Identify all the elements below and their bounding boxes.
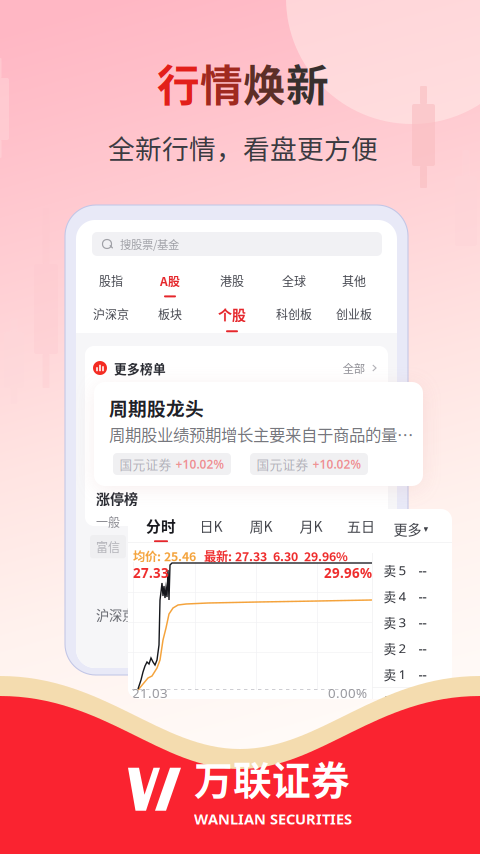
staticText: 1 [398, 665, 406, 683]
staticText: 情 [200, 52, 243, 114]
staticText: 全新行情，看盘更方便 [108, 128, 378, 167]
staticText: 29.96% [324, 564, 372, 582]
button[interactable]: 板块 [158, 305, 182, 331]
staticText: 月K [299, 515, 322, 536]
staticText: 卖 [383, 639, 396, 657]
staticText: 涨停榜 [96, 488, 138, 508]
staticText: 沪深京 [96, 605, 135, 624]
button[interactable]: 全球 [282, 272, 306, 297]
staticText: -- [418, 561, 426, 579]
staticText: 新 [286, 52, 329, 114]
staticText: 均价: 25.46 [133, 547, 196, 565]
staticText: 沪深京 [93, 305, 129, 323]
button[interactable]: 更多榜单 [85, 346, 388, 390]
button[interactable]: 个股 [218, 304, 246, 332]
staticText: 周K [249, 515, 272, 536]
button[interactable]: 沪深京 [93, 305, 129, 331]
staticText: 4 [398, 692, 406, 710]
staticText: 卖 [383, 613, 396, 631]
staticText: 股指 [99, 272, 123, 289]
button[interactable]: 更多 [386, 519, 436, 539]
staticText: 4 [398, 587, 406, 605]
button[interactable]: 港股 [220, 272, 244, 297]
staticText: -- [418, 613, 426, 631]
staticText: 最新: 27.33 6.30 29.96% [204, 547, 348, 565]
staticText: 27.33 [133, 564, 169, 582]
staticText: 2 [398, 639, 406, 657]
staticText: 卖 [383, 561, 396, 579]
staticText: 全部 [343, 360, 365, 376]
staticText: A股 [160, 272, 180, 289]
button[interactable]: 科创板 [276, 305, 312, 331]
staticText: 卖 [383, 692, 396, 710]
staticText: 国元证券 [256, 455, 308, 473]
staticText: -- [418, 692, 426, 710]
staticText: 港股 [220, 272, 244, 289]
staticText: WANLIAN SECURITIES [194, 809, 352, 828]
staticText: 分时 [146, 515, 176, 536]
staticText: -- [418, 639, 426, 657]
staticText: 更多榜单 [114, 359, 166, 377]
staticText: 卖 [383, 665, 396, 683]
staticText: 行 [157, 52, 200, 114]
button[interactable]: 五日 [347, 515, 375, 542]
staticText: 国元证券 [119, 455, 171, 473]
staticText: 五日 [347, 515, 375, 536]
staticText: 全球 [282, 272, 306, 289]
staticText: 更多 [393, 519, 421, 539]
staticText: 板块 [158, 305, 182, 323]
staticText: 一般 [96, 513, 120, 530]
staticText: 日K [199, 515, 222, 536]
button[interactable]: 月K [299, 515, 322, 542]
staticText: +10.02% [175, 456, 224, 472]
staticText: 万联证券 [194, 750, 350, 806]
staticText: 0.00% [328, 684, 367, 702]
button[interactable]: 创业板 [336, 305, 372, 331]
staticText: -- [418, 665, 426, 683]
staticText: 科创板 [276, 305, 312, 323]
staticText: 个股 [218, 304, 246, 324]
staticText: 周期股龙头 [109, 394, 204, 421]
staticText: 创业板 [336, 305, 372, 323]
button[interactable]: 日K [199, 515, 222, 542]
staticText: 5 [398, 561, 406, 579]
button[interactable]: 分时 [146, 515, 176, 542]
staticText: ▾ [423, 523, 428, 534]
staticText: 21.03 [132, 684, 168, 702]
button[interactable]: 其他 [342, 272, 366, 297]
staticText: 焕 [243, 52, 286, 114]
staticText: +10.02% [312, 456, 361, 472]
staticText: 其他 [342, 272, 366, 289]
staticText: 卖 [383, 587, 396, 605]
staticText: 搜股票/基金 [120, 236, 179, 252]
button[interactable]: 周K [249, 515, 272, 542]
button[interactable]: 股指 [99, 272, 123, 297]
button[interactable]: A股 [160, 272, 180, 297]
staticText: 周期股业绩预期增长主要来自于商品的量… [109, 422, 413, 446]
staticText: 3 [398, 613, 406, 631]
staticText: -- [418, 587, 426, 605]
staticText: 富信 [96, 538, 120, 555]
